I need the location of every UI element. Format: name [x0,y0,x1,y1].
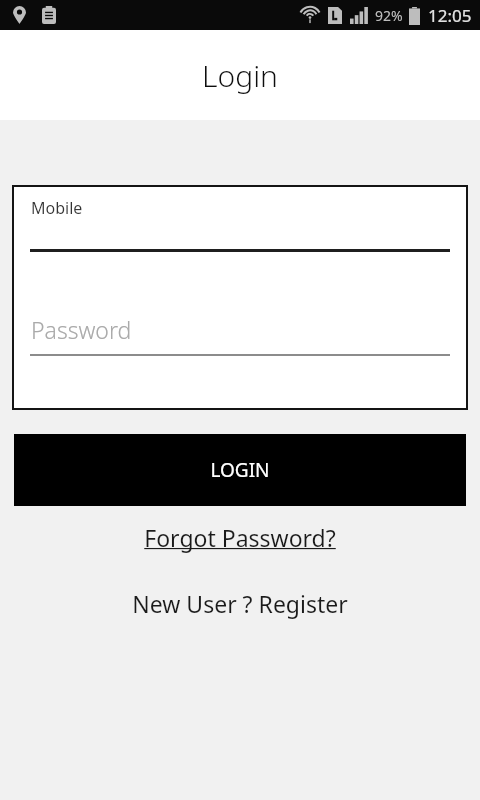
staticText: LOGIN [210,457,270,483]
staticText: Forgot Password? [144,522,336,553]
staticText: 92% [375,6,403,25]
staticText: Login [202,55,278,96]
staticText: Mobile [31,197,83,219]
button[interactable]: Forgot Password? [0,514,480,560]
staticText: Password [31,314,132,345]
button[interactable]: New User ? Register [0,582,480,624]
staticText: New User ? Register [132,588,348,619]
button[interactable]: LOGIN [14,434,466,506]
staticText: 12:05 [428,4,472,27]
